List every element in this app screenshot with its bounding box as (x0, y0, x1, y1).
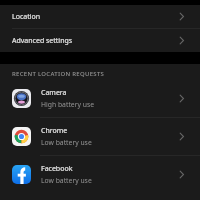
staticText: High battery use (41, 100, 95, 109)
staticText: RECENT LOCATION REQUESTS (12, 70, 105, 78)
staticText: Low battery use (41, 176, 92, 185)
button[interactable]: Facebook (0, 156, 200, 193)
staticText: Low battery use (41, 138, 92, 147)
button[interactable]: Chrome (0, 118, 200, 155)
staticText: Facebook (41, 164, 73, 174)
staticText: Camera (41, 88, 67, 98)
staticText: Chrome (41, 126, 68, 136)
button[interactable]: Advanced settings (0, 29, 200, 52)
staticText: Location (12, 12, 41, 22)
staticText: Advanced settings (12, 36, 73, 46)
button[interactable]: Camera (0, 80, 200, 117)
button[interactable]: Location (0, 5, 200, 28)
